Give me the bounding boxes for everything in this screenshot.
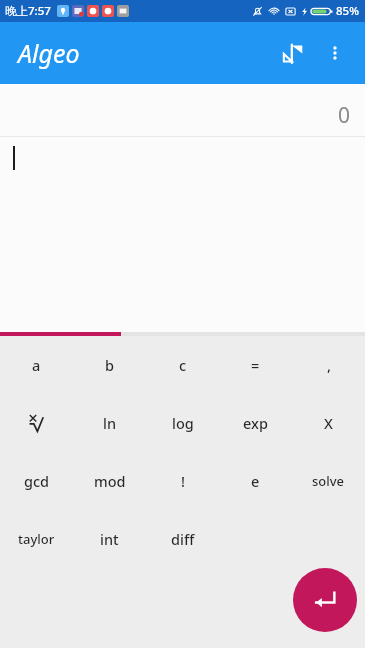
staticText: a <box>32 355 41 375</box>
staticText: solve <box>312 472 345 490</box>
staticText: 85% <box>336 3 359 19</box>
button[interactable]: gcd <box>0 452 73 510</box>
button[interactable]: X <box>292 394 365 452</box>
button[interactable]: ln <box>73 394 146 452</box>
staticText: mod <box>94 471 126 491</box>
staticText: = <box>251 355 260 375</box>
button[interactable] <box>0 137 365 332</box>
staticText: 0 <box>338 101 351 130</box>
button[interactable]: exp <box>219 394 292 452</box>
button[interactable]: diff <box>146 510 219 568</box>
button[interactable]: x-th root <box>0 394 73 452</box>
button[interactable]: taylor <box>0 510 73 568</box>
button[interactable]: a <box>0 336 73 394</box>
button[interactable]: ! <box>146 452 219 510</box>
button[interactable]: mod <box>73 452 146 510</box>
button[interactable]: , <box>292 336 365 394</box>
staticText: gcd <box>24 471 50 491</box>
staticText: ! <box>181 471 185 491</box>
staticText: taylor <box>18 530 55 548</box>
button[interactable]: int <box>73 510 146 568</box>
staticText: 晚上7:57 <box>5 3 51 19</box>
staticText: log <box>172 413 194 433</box>
button[interactable]: Plot graph <box>273 33 313 73</box>
button[interactable]: solve <box>292 452 365 510</box>
staticText: ln <box>103 413 117 433</box>
staticText: X <box>324 413 333 433</box>
staticText: c <box>179 355 187 375</box>
staticText: int <box>100 529 119 549</box>
button[interactable]: e <box>219 452 292 510</box>
staticText: diff <box>171 529 195 549</box>
button[interactable]: b <box>73 336 146 394</box>
button[interactable]: c <box>146 336 219 394</box>
staticText: exp <box>243 413 268 433</box>
button[interactable]: = <box>219 336 292 394</box>
staticText: e <box>251 471 260 491</box>
staticText: , <box>327 355 331 375</box>
button[interactable]: More options <box>315 33 355 73</box>
button[interactable]: Evaluate <box>293 568 357 632</box>
button[interactable]: 0 <box>0 84 365 136</box>
staticText: b <box>105 355 114 375</box>
button[interactable]: log <box>146 394 219 452</box>
button[interactable]: Algeo <box>18 36 80 70</box>
staticText: Algeo <box>18 36 80 70</box>
